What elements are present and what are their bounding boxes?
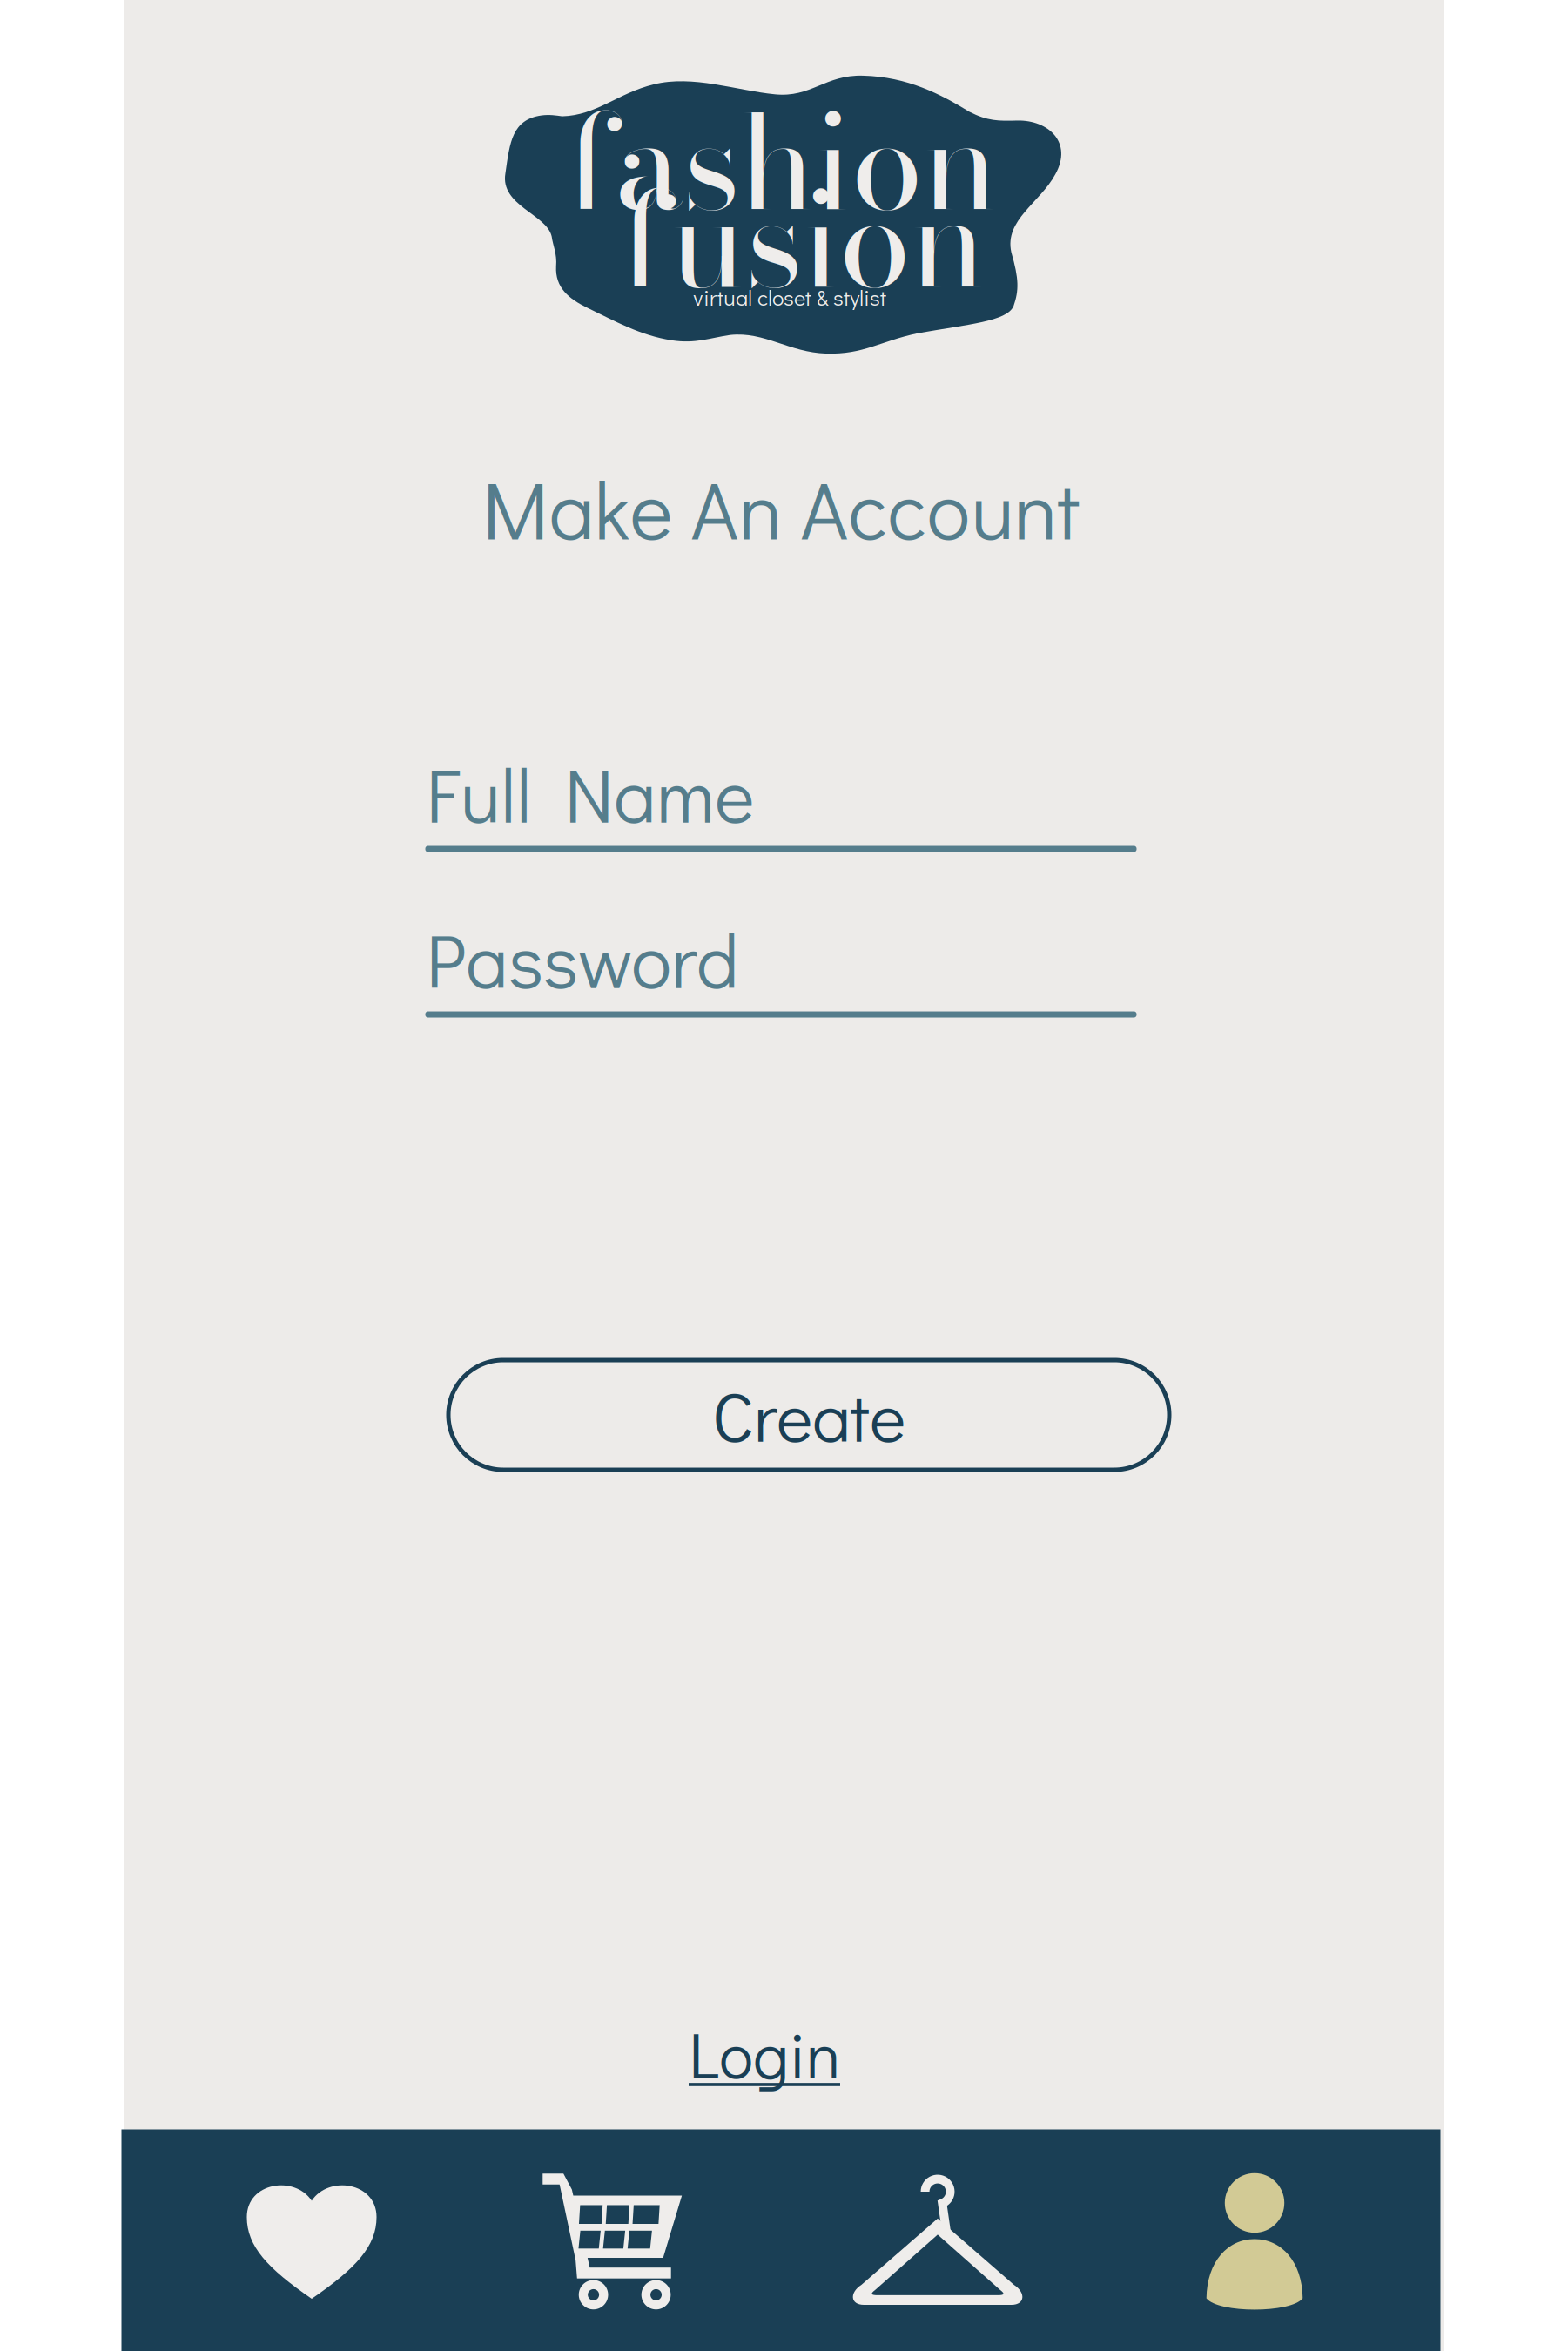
staticText: Create (712, 1370, 905, 1460)
button[interactable]: Login (689, 2011, 840, 2095)
staticText: Make An Account (482, 454, 1080, 561)
button[interactable]: Create (448, 1360, 1169, 1470)
button[interactable]: Cart (447, 2129, 777, 2351)
button[interactable]: Profile (1090, 2129, 1420, 2351)
staticText: fashion (566, 63, 997, 261)
button[interactable]: Favorites (147, 2129, 477, 2351)
staticText: fusion (620, 140, 985, 339)
staticText: Login (689, 2011, 840, 2095)
staticText: virtual closet & stylist (693, 282, 886, 311)
staticText: Full Name (426, 744, 755, 843)
button[interactable]: Closet (773, 2129, 1103, 2351)
staticText: Password (426, 909, 739, 1008)
